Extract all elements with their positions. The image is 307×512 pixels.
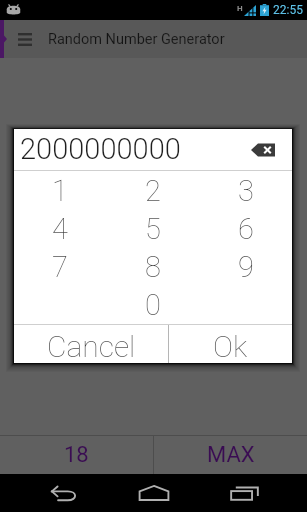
button[interactable]: 0 [106, 286, 199, 324]
staticText: 3 [238, 174, 254, 208]
staticText: 5 [145, 212, 161, 246]
staticText: 4 [52, 212, 68, 246]
staticText: 1 [52, 174, 68, 208]
button[interactable]: 6 [199, 210, 292, 248]
staticText: 2000000000 [20, 132, 181, 166]
staticText: 2 [145, 174, 161, 208]
button[interactable]: 7 [14, 248, 106, 286]
staticText: 8 [145, 250, 161, 284]
staticText: 9 [238, 250, 254, 284]
button[interactable]: Backspace [251, 139, 275, 161]
button[interactable]: Home [114, 474, 194, 512]
button[interactable]: 9 [199, 248, 292, 286]
staticText: 18 [64, 442, 89, 468]
staticText: H [237, 4, 243, 13]
button[interactable]: 3 [199, 171, 292, 210]
staticText: 0 [145, 288, 161, 322]
staticText: 7 [52, 250, 68, 284]
button[interactable]: MAX [154, 436, 307, 474]
staticText: 22:55 [273, 3, 303, 17]
button[interactable]: 18 [0, 436, 153, 474]
button[interactable]: Recent apps [204, 474, 284, 512]
button[interactable]: Open navigation drawer [14, 26, 36, 52]
staticText: Random Number Generator [48, 31, 225, 48]
staticText: MAX [207, 442, 255, 468]
staticText: 6 [238, 212, 254, 246]
button[interactable]: Back [27, 474, 99, 512]
staticText: Ok [213, 329, 248, 364]
button[interactable]: 1 [14, 171, 106, 210]
button[interactable]: Ok [169, 325, 292, 363]
button[interactable]: 8 [106, 248, 199, 286]
button[interactable]: Cancel [14, 325, 168, 363]
button[interactable]: 4 [14, 210, 106, 248]
button[interactable]: 2 [106, 171, 199, 210]
staticText: Cancel [47, 329, 136, 364]
button[interactable]: 5 [106, 210, 199, 248]
